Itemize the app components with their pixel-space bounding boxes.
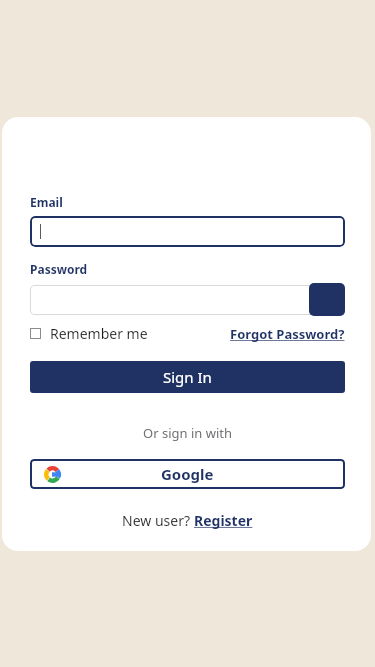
staticText: New user? (122, 511, 194, 530)
staticText: Sign In (163, 367, 212, 387)
button[interactable]: Google (30, 459, 345, 489)
staticText: Email (30, 194, 63, 210)
staticText: Forgot Password? (230, 325, 345, 343)
staticText: Remember me (50, 324, 148, 343)
staticText: Google (161, 464, 214, 484)
button[interactable]: Register (194, 511, 253, 530)
button[interactable]: Show password (309, 283, 345, 316)
staticText: Or sign in with (30, 424, 345, 442)
staticText: Password (30, 261, 88, 277)
staticText: Register (194, 511, 253, 530)
button[interactable] (30, 285, 345, 315)
button[interactable]: Sign In (30, 361, 345, 393)
button[interactable]: Remember me (30, 322, 148, 345)
button[interactable] (30, 216, 345, 247)
button[interactable]: Forgot Password? (230, 323, 345, 345)
